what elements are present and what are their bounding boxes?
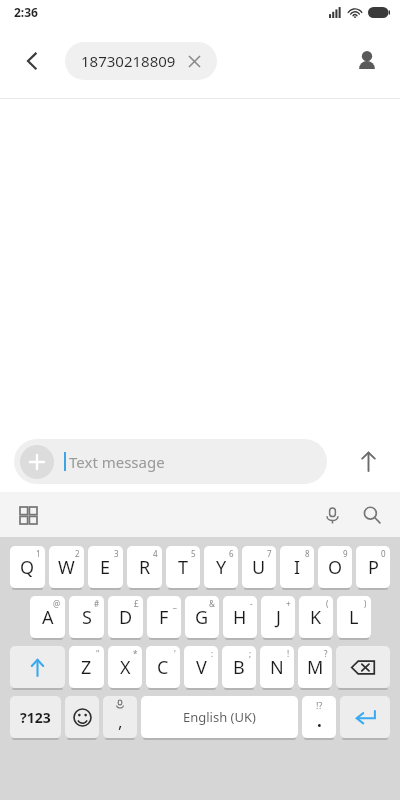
button[interactable]: B: [222, 646, 256, 688]
button[interactable]: I: [280, 546, 314, 588]
button[interactable]: P: [356, 546, 390, 588]
button[interactable]: Search: [352, 495, 392, 535]
staticText: 18730218809: [81, 51, 176, 71]
staticText: 5: [191, 548, 196, 559]
button[interactable]: Keyboard layouts: [8, 495, 48, 535]
staticText: -: [250, 598, 253, 609]
staticText: Text message: [69, 452, 165, 472]
button[interactable]: K: [299, 596, 333, 638]
button[interactable]: Add attachment: [14, 439, 327, 484]
button[interactable]: X: [108, 646, 142, 688]
staticText: C: [157, 655, 169, 680]
button[interactable]: 18730218809: [65, 42, 217, 80]
button[interactable]: H: [223, 596, 257, 638]
staticText: ?: [324, 648, 328, 659]
staticText: Q: [20, 555, 35, 580]
staticText: J: [276, 605, 281, 630]
staticText: ?123: [20, 708, 51, 727]
button[interactable]: ,: [103, 696, 137, 738]
button[interactable]: M: [298, 646, 332, 688]
staticText: E: [100, 555, 111, 580]
staticText: W: [58, 555, 75, 580]
other: Enter: [354, 709, 376, 725]
staticText: (: [326, 598, 329, 609]
staticText: 4: [153, 548, 158, 559]
other: Emoji: [73, 708, 92, 727]
button[interactable]: O: [318, 546, 352, 588]
staticText: 0: [381, 548, 386, 559]
button[interactable]: U: [242, 546, 276, 588]
staticText: 2:36: [14, 4, 38, 20]
staticText: ;: [249, 648, 252, 659]
staticText: Z: [81, 655, 92, 680]
staticText: !: [287, 648, 290, 659]
button[interactable]: S: [69, 596, 104, 638]
staticText: &: [209, 598, 215, 609]
button[interactable]: C: [146, 646, 180, 688]
staticText: !?: [316, 699, 323, 711]
button[interactable]: E: [88, 546, 123, 588]
button[interactable]: .: [302, 696, 336, 738]
staticText: 9: [343, 548, 348, 559]
staticText: ): [364, 598, 367, 609]
button[interactable]: Back: [8, 37, 56, 85]
button[interactable]: Enter: [340, 696, 390, 738]
staticText: T: [178, 555, 189, 580]
staticText: *: [133, 648, 138, 659]
staticText: A: [42, 605, 54, 630]
staticText: R: [139, 555, 151, 580]
staticText: L: [349, 605, 359, 630]
staticText: F: [159, 605, 169, 630]
other: Backspace: [351, 659, 375, 676]
button[interactable]: W: [49, 546, 84, 588]
staticText: .: [317, 709, 322, 732]
other: Shift: [28, 658, 47, 677]
button[interactable]: J: [261, 596, 295, 638]
button[interactable]: Z: [69, 646, 104, 688]
staticText: D: [119, 605, 133, 630]
button[interactable]: D: [108, 596, 143, 638]
staticText: S: [82, 605, 92, 630]
staticText: 2: [75, 548, 80, 559]
button[interactable]: Send: [344, 437, 392, 485]
staticText: P: [368, 555, 379, 580]
button[interactable]: R: [127, 546, 162, 588]
button[interactable]: L: [337, 596, 371, 638]
staticText: B: [233, 655, 245, 680]
button[interactable]: Q: [10, 546, 45, 588]
staticText: ': [174, 648, 176, 659]
staticText: X: [120, 655, 131, 680]
button[interactable]: Shift: [10, 646, 65, 688]
button[interactable]: G: [185, 596, 219, 638]
button[interactable]: Contact details: [344, 38, 390, 84]
button[interactable]: T: [166, 546, 200, 588]
staticText: H: [233, 605, 247, 630]
staticText: :: [211, 648, 214, 659]
staticText: @: [53, 598, 61, 609]
staticText: English (UK): [183, 708, 256, 726]
button[interactable]: N: [260, 646, 294, 688]
staticText: O: [328, 555, 343, 580]
button[interactable]: ?123: [10, 696, 61, 738]
staticText: ": [96, 648, 100, 659]
button[interactable]: English (UK): [141, 696, 298, 738]
button[interactable]: Backspace: [336, 646, 390, 688]
button[interactable]: F: [147, 596, 181, 638]
button[interactable]: A: [30, 596, 65, 638]
button[interactable]: Y: [204, 546, 238, 588]
staticText: 6: [229, 548, 234, 559]
staticText: ,: [118, 710, 123, 733]
button[interactable]: Emoji: [65, 696, 99, 738]
staticText: #: [94, 598, 100, 609]
staticText: 1: [36, 548, 41, 559]
staticText: +: [286, 598, 291, 609]
staticText: V: [196, 655, 207, 680]
button[interactable]: Add attachment: [20, 445, 54, 479]
staticText: 3: [114, 548, 119, 559]
staticText: G: [195, 605, 209, 630]
staticText: I: [294, 555, 301, 580]
button[interactable]: V: [184, 646, 218, 688]
staticText: _: [173, 598, 177, 609]
button[interactable]: Voice input: [312, 495, 352, 535]
staticText: N: [270, 655, 284, 680]
